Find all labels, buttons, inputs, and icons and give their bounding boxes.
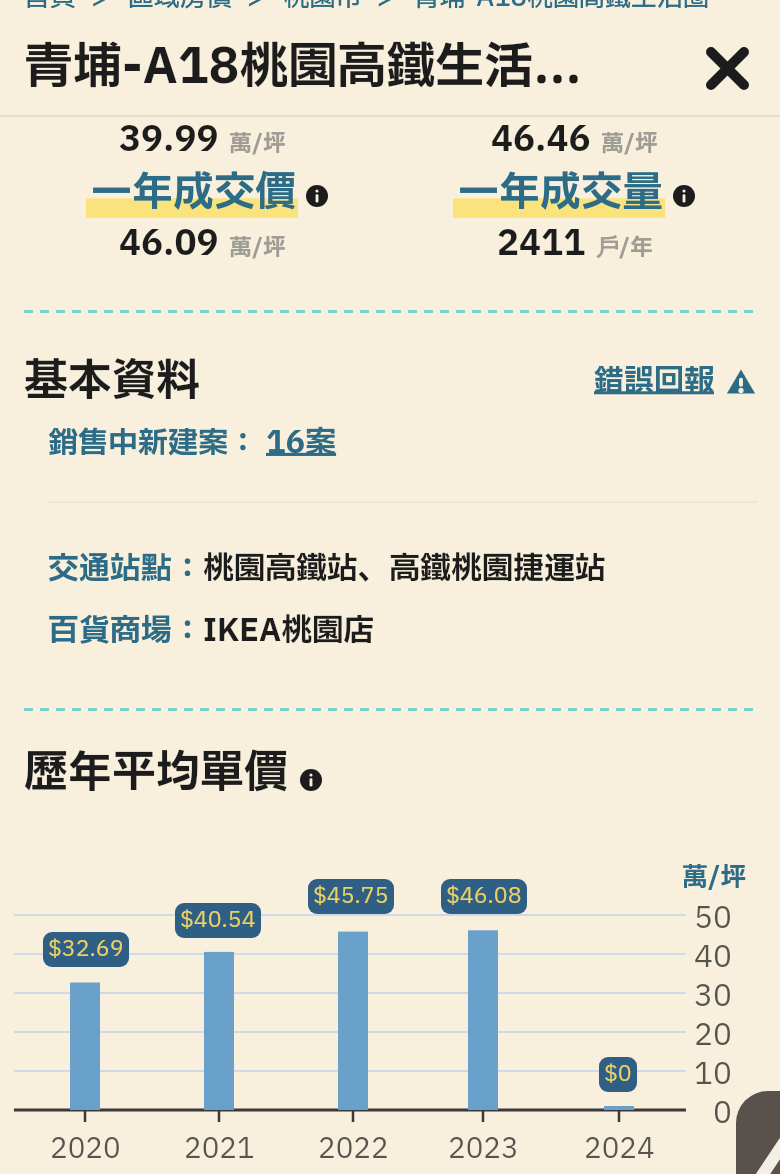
staticText: $45.75 <box>313 880 389 913</box>
staticText: 20 <box>694 1013 732 1058</box>
staticText: 青埔-A18桃園高鐵生活... <box>24 31 582 104</box>
staticText: 2411 <box>497 218 586 270</box>
staticText: 銷售中新建案： <box>48 421 258 466</box>
button[interactable] <box>673 185 695 207</box>
staticText: $46.08 <box>446 880 522 913</box>
button[interactable]: 16案 <box>266 420 337 466</box>
staticText: $0 <box>604 1058 632 1091</box>
staticText: $40.54 <box>180 904 256 937</box>
button[interactable]: 一年成交價 <box>91 163 296 224</box>
staticText: 交通站點： <box>48 546 203 592</box>
button[interactable] <box>705 46 750 91</box>
button[interactable] <box>736 1091 780 1174</box>
staticText: 10 <box>694 1052 732 1097</box>
staticText: 萬/坪 <box>682 858 747 897</box>
staticText: 46.46 <box>491 114 591 166</box>
staticText: 50 <box>694 896 732 941</box>
staticText: 2021 <box>184 1128 255 1170</box>
staticText: 2023 <box>448 1128 519 1170</box>
staticText: 百貨商場： <box>48 608 203 654</box>
staticText: 2020 <box>50 1128 121 1170</box>
staticText: 歷年平均單價 <box>24 740 288 806</box>
staticText: 2022 <box>318 1128 389 1170</box>
staticText: 39.99 <box>119 114 219 166</box>
button[interactable] <box>306 185 328 207</box>
staticText: 桃園高鐵站、高鐵桃園捷運站 <box>203 546 606 592</box>
button[interactable]: 一年成交量 <box>458 163 663 224</box>
staticText: 錯誤回報 <box>594 359 714 404</box>
staticText: 46.09 <box>119 218 219 270</box>
staticText: 萬/坪 <box>229 127 287 161</box>
staticText: 首頁 ＞ 區域房價 ＞ 桃園市 ＞ 青埔-A18桃園高鐵生活圈 <box>24 0 709 17</box>
staticText: 0 <box>713 1091 732 1136</box>
staticText: 2024 <box>584 1128 655 1170</box>
staticText: 40 <box>694 935 732 980</box>
staticText: 30 <box>694 974 732 1019</box>
staticText: 戶/年 <box>596 231 654 265</box>
staticText: IKEA桃園店 <box>203 608 375 654</box>
button[interactable] <box>300 769 322 791</box>
button[interactable]: 首頁 ＞ 區域房價 ＞ 桃園市 ＞ 青埔-A18桃園高鐵生活圈 <box>24 0 709 17</box>
staticText: 萬/坪 <box>601 127 659 161</box>
staticText: 萬/坪 <box>229 231 287 265</box>
staticText: 基本資料 <box>24 348 200 414</box>
button[interactable]: 錯誤回報 <box>594 359 756 404</box>
staticText: $32.69 <box>48 933 124 966</box>
